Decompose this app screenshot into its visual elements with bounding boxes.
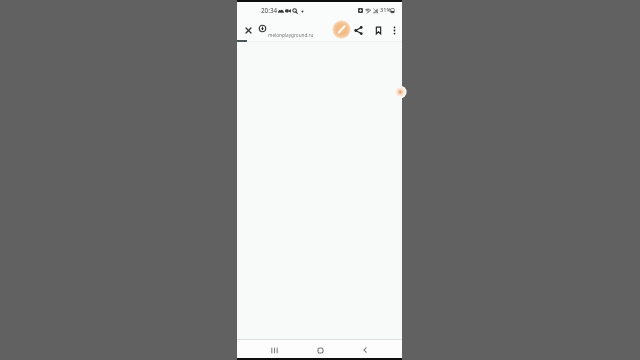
button[interactable]: Back bbox=[359, 344, 371, 356]
button[interactable]: melonplayground.ru bbox=[268, 30, 314, 40]
button[interactable]: Bookmark bbox=[371, 23, 385, 37]
button[interactable]: Edit bbox=[331, 19, 351, 39]
staticText: 20:34 bbox=[261, 6, 278, 15]
button[interactable]: Close bbox=[242, 24, 254, 36]
button[interactable]: Page info bbox=[256, 22, 268, 34]
staticText: 31% bbox=[380, 6, 392, 14]
button[interactable]: Share bbox=[351, 23, 365, 37]
button[interactable]: Recent apps bbox=[268, 344, 280, 356]
button[interactable]: More options bbox=[387, 23, 401, 37]
button[interactable]: Home bbox=[314, 344, 326, 356]
staticText: melonplayground.ru bbox=[268, 32, 314, 38]
